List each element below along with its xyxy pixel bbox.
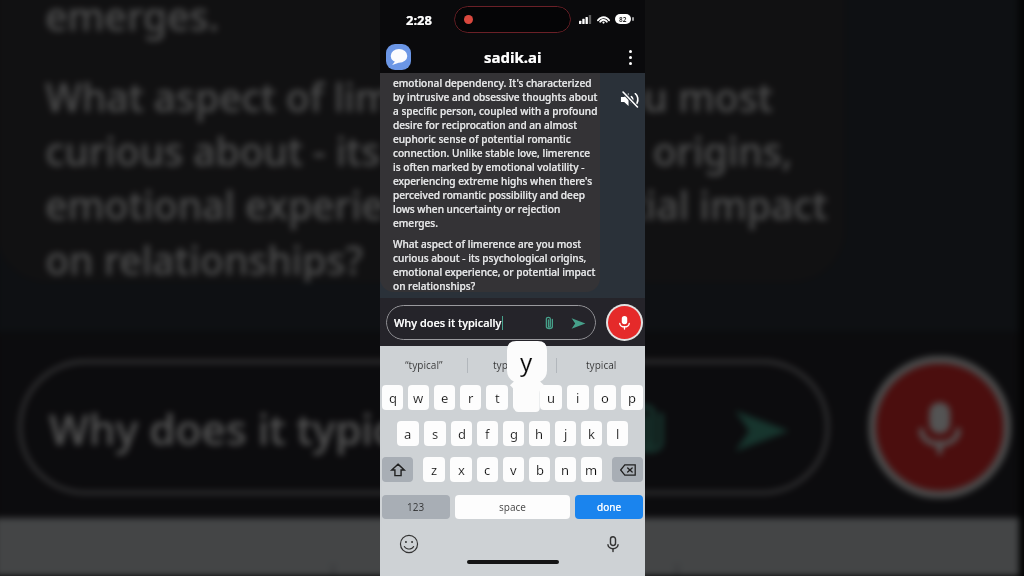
staticText: emotional dependency. It's characterized… xyxy=(393,76,598,230)
button[interactable]: u xyxy=(540,385,562,410)
button[interactable]: z xyxy=(423,457,445,482)
staticText: c xyxy=(484,461,491,479)
staticText: r xyxy=(468,389,474,407)
button[interactable]: typical xyxy=(679,518,1019,576)
button[interactable]: a xyxy=(397,421,419,446)
button[interactable]: 123 xyxy=(382,495,450,519)
staticText: q xyxy=(389,389,397,407)
staticText: What aspect of limerence are you most cu… xyxy=(45,70,830,282)
staticText: y xyxy=(520,345,533,378)
button[interactable]: x xyxy=(450,457,472,482)
button[interactable]: r xyxy=(460,385,481,410)
button[interactable]: Why does it typically xyxy=(386,305,596,340)
staticText: typical xyxy=(586,358,617,372)
button[interactable]: typically xyxy=(335,518,675,576)
button[interactable]: j xyxy=(555,421,576,446)
staticText: v xyxy=(510,461,517,479)
button[interactable]: b xyxy=(529,457,550,482)
button[interactable]: Emoji xyxy=(398,533,420,555)
button[interactable]: w xyxy=(408,385,429,410)
staticText: x xyxy=(458,461,465,479)
button[interactable]: More options xyxy=(617,44,643,70)
button[interactable]: h xyxy=(529,421,550,446)
button[interactable]: Why does it typically xyxy=(18,359,830,495)
button[interactable]: Mute xyxy=(618,88,640,110)
button[interactable]: v xyxy=(503,457,524,482)
staticText: Why does it typically xyxy=(394,315,502,330)
staticText: s xyxy=(432,425,439,443)
staticText: i xyxy=(576,389,580,407)
button[interactable]: t xyxy=(486,385,508,410)
button[interactable]: Attach xyxy=(541,314,558,331)
staticText: k xyxy=(588,425,595,443)
staticText: space xyxy=(499,500,526,514)
button[interactable]: Messages xyxy=(386,44,411,70)
button[interactable]: k xyxy=(581,421,602,446)
button[interactable]: Send xyxy=(725,394,795,464)
staticText: j xyxy=(564,425,568,443)
staticText: “typical” xyxy=(92,564,238,576)
button[interactable]: n xyxy=(555,457,576,482)
staticText: b xyxy=(536,461,544,479)
button[interactable]: m xyxy=(581,457,602,482)
button[interactable]: l xyxy=(607,421,628,446)
staticText: d xyxy=(458,425,466,443)
button[interactable]: Voice input xyxy=(876,363,1003,491)
staticText: h xyxy=(535,425,544,443)
staticText: o xyxy=(601,389,609,407)
staticText: a xyxy=(404,425,412,443)
button[interactable]: c xyxy=(477,457,498,482)
button[interactable]: e xyxy=(434,385,455,410)
button[interactable]: Attach xyxy=(617,394,683,460)
staticText: w xyxy=(413,389,424,407)
button[interactable]: Shift xyxy=(382,457,413,482)
button[interactable]: Voice input xyxy=(608,306,641,339)
button[interactable]: o xyxy=(594,385,616,410)
button[interactable]: Dictate xyxy=(602,533,624,555)
staticText: emotional dependency. It's characterized… xyxy=(45,0,837,43)
button[interactable]: d xyxy=(451,421,472,446)
staticText: u xyxy=(547,389,556,407)
button[interactable]: typical xyxy=(557,346,645,384)
staticText: typically xyxy=(493,358,532,372)
button[interactable]: Send xyxy=(569,314,587,332)
button[interactable]: space xyxy=(455,495,570,519)
staticText: y xyxy=(536,514,586,576)
button[interactable]: typically xyxy=(468,346,556,384)
staticText: 82 xyxy=(619,15,627,24)
button[interactable]: g xyxy=(503,421,524,446)
staticText: 2:28 xyxy=(406,11,432,29)
staticText: typical xyxy=(791,564,911,576)
staticText: sadik.ai xyxy=(484,47,542,67)
staticText: n xyxy=(561,461,570,479)
button[interactable]: i xyxy=(567,385,589,410)
button[interactable]: q xyxy=(382,385,403,410)
staticText: l xyxy=(616,425,620,443)
staticText: t xyxy=(495,389,500,407)
button[interactable]: p xyxy=(621,385,643,410)
button[interactable]: Backspace xyxy=(612,457,643,482)
button[interactable]: s xyxy=(424,421,446,446)
staticText: “typical” xyxy=(405,358,443,372)
staticText: e xyxy=(441,389,449,407)
staticText: p xyxy=(628,389,636,407)
button[interactable]: f xyxy=(477,421,498,446)
staticText: m xyxy=(585,461,598,479)
staticText: g xyxy=(510,425,518,443)
staticText: f xyxy=(485,425,490,443)
button[interactable]: “typical” xyxy=(0,518,331,576)
staticText: z xyxy=(431,461,438,479)
button[interactable]: “typical” xyxy=(380,346,467,384)
staticText: 123 xyxy=(407,500,425,514)
button[interactable]: done xyxy=(575,495,643,519)
staticText: Why does it typically xyxy=(49,398,466,456)
staticText: What aspect of limerence are you most cu… xyxy=(393,237,596,292)
staticText: done xyxy=(597,500,622,514)
